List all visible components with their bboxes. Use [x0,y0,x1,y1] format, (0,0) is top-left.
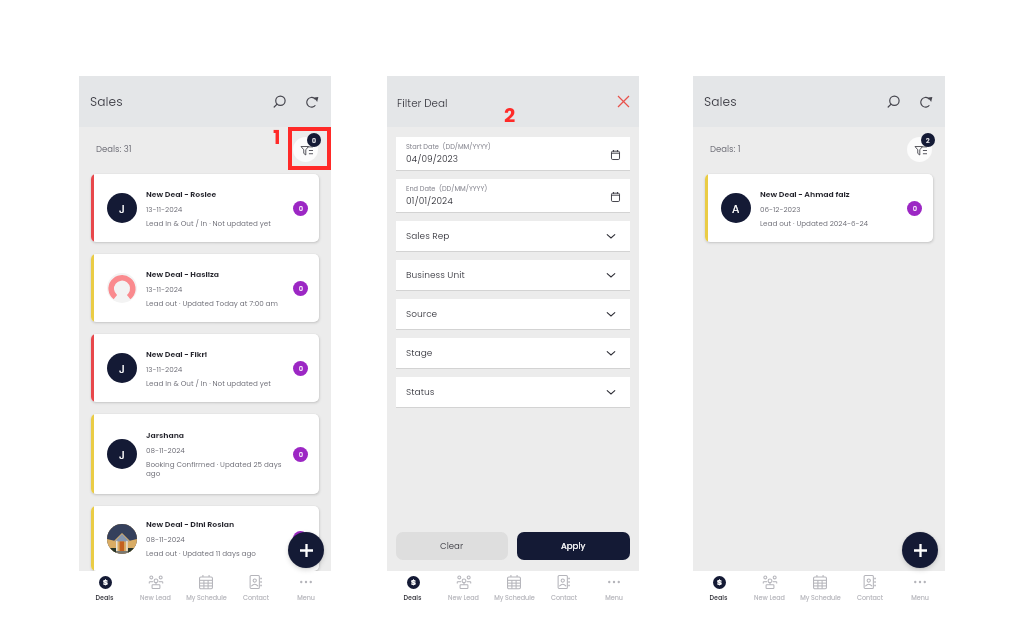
button[interactable]: Status [396,377,630,407]
staticText: Filter Deal [397,96,448,111]
button[interactable]: Business Unit [396,260,630,290]
staticText: Lead out · Updated 11 days ago [146,548,256,558]
button[interactable]: Search [883,91,905,113]
staticText: Status [406,386,435,399]
button[interactable]: End Date (DD/MM/YYYY) [396,179,630,212]
staticText: 0 [299,364,303,373]
staticText: Business Unit [406,269,465,282]
staticText: Deals [403,593,422,602]
button[interactable]: J [91,334,319,402]
button[interactable]: Refresh [301,91,323,113]
staticText: Contact [551,593,577,602]
button[interactable]: Filter deals [293,132,326,165]
staticText: 06-12-2023 [760,204,801,214]
staticText: Contact [857,593,883,602]
staticText: Sales Rep [406,230,450,243]
button[interactable]: A [705,174,933,242]
staticText: Stage [406,347,433,360]
button[interactable]: Add new deal [288,532,324,568]
staticText: Sales [90,93,123,110]
staticText: Contact [243,593,269,602]
staticText: 01/01/2024 [406,195,453,207]
staticText: Source [406,308,438,321]
staticText: Deals: 1 [710,143,741,155]
staticText: Jarshana [146,430,185,441]
button[interactable]: Clear [396,532,508,560]
staticText: New Lead [448,593,479,602]
staticText: Menu [911,593,929,602]
staticText: New Deal - Hasliza [146,269,220,280]
staticText: $ [103,577,108,588]
staticText: 08-11-2024 [146,445,185,455]
button[interactable]: Contact [539,571,589,602]
staticText: Clear [440,540,464,552]
button[interactable]: Source [396,299,630,329]
button[interactable]: My Schedule [181,571,231,602]
button[interactable]: J [91,174,319,242]
staticText: $ [717,577,722,588]
staticText: Deals [95,593,114,602]
staticText: Start Date (DD/MM/YYYY) [406,142,491,151]
staticText: My Schedule [186,593,227,602]
staticText: My Schedule [800,593,841,602]
staticText: 13-11-2024 [146,284,183,294]
staticText: Menu [297,593,315,602]
button[interactable]: New Deal - Dini Roslan [91,506,319,571]
button[interactable]: Contact [231,571,281,602]
staticText: 04/09/2023 [406,153,458,165]
staticText: 1 [273,123,281,151]
staticText: 2 [926,136,930,145]
button[interactable]: $ [79,571,130,602]
button[interactable]: Menu [281,571,331,602]
button[interactable]: Contact [845,571,895,602]
staticText: New Deal - Dini Roslan [146,519,235,530]
staticText: Menu [605,593,623,602]
button[interactable]: Menu [895,571,945,602]
button[interactable]: New Lead [744,571,795,602]
staticText: My Schedule [494,593,535,602]
staticText: Booking Confirmed · Updated 25 days ago [146,459,289,479]
staticText: J [119,447,125,462]
button[interactable]: $ [693,571,744,602]
button[interactable]: Refresh [915,91,937,113]
button[interactable]: Apply [517,532,630,560]
button[interactable]: Close [614,92,632,110]
button[interactable]: Search [269,91,291,113]
button[interactable]: New Lead [438,571,489,602]
staticText: Lead In & Out / In · Not updated yet [146,218,271,228]
button[interactable]: My Schedule [795,571,845,602]
staticText: 0 [299,284,303,293]
staticText: Deals: 31 [96,143,132,155]
staticText: End Date (DD/MM/YYYY) [406,184,488,193]
button[interactable]: Filter deals [907,132,940,165]
staticText: 0 [299,204,303,213]
button[interactable]: J [91,414,319,494]
staticText: 13-11-2024 [146,364,183,374]
staticText: Sales [704,93,737,110]
staticText: Deals [709,593,728,602]
staticText: A [732,201,740,216]
staticText: 13-11-2024 [146,204,183,214]
staticText: Lead out · Updated 2024-6-24 [760,218,869,228]
staticText: New Deal - Roslee [146,189,217,200]
button[interactable]: Sales Rep [396,221,630,251]
button[interactable]: Menu [589,571,639,602]
button[interactable]: Add new deal [902,532,938,568]
button[interactable]: New Deal - Hasliza [91,254,319,322]
button[interactable]: $ [387,571,438,602]
staticText: 0 [299,450,303,459]
button[interactable]: My Schedule [489,571,539,602]
staticText: Lead In & Out / In · Not updated yet [146,378,271,388]
staticText: J [119,361,125,376]
staticText: J [119,201,125,216]
staticText: New Deal - Ahmad faiz [760,189,850,200]
staticText: 08-11-2024 [146,534,185,544]
staticText: New Lead [754,593,785,602]
button[interactable]: New Lead [130,571,181,602]
staticText: Lead out · Updated Today at 7:00 am [146,298,278,308]
button[interactable]: Stage [396,338,630,368]
button[interactable]: Start Date (DD/MM/YYYY) [396,137,630,170]
staticText: 0 [312,136,316,145]
staticText: Apply [561,540,586,552]
staticText: $ [411,577,416,588]
